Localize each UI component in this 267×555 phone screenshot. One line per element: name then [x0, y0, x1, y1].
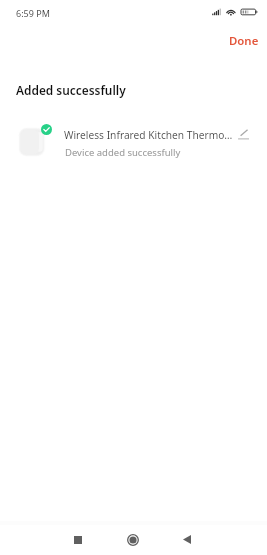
staticText: Wireless Infrared Kitchen Thermo… [64, 128, 234, 142]
staticText: 6:59 PM [16, 7, 50, 19]
staticText: Added successfully [16, 82, 126, 98]
button[interactable]: Recents [56, 527, 100, 552]
button[interactable]: Wireless Infrared Kitchen Thermo… [0, 118, 267, 166]
staticText: Device added successfully [65, 146, 181, 159]
staticText: Done [229, 33, 259, 49]
button[interactable]: Back [165, 527, 209, 552]
button[interactable]: Home [111, 527, 155, 552]
button[interactable]: Done [219, 28, 267, 54]
button[interactable]: Rename device [234, 126, 251, 143]
